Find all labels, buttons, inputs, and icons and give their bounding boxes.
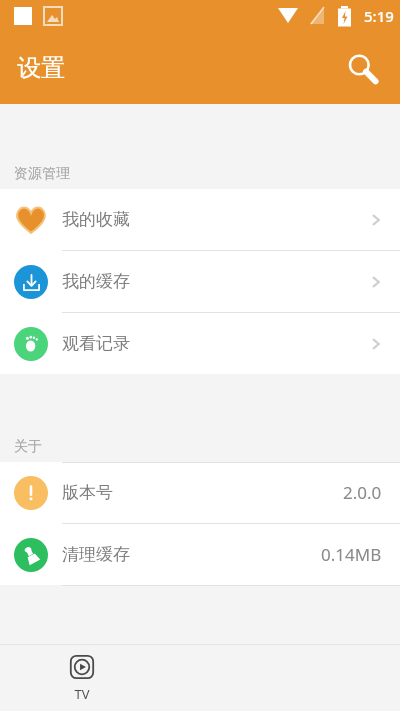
staticText: 我的缓存 [62, 271, 130, 292]
button[interactable]: 版本号 [0, 462, 400, 524]
staticText: 资源管理 [14, 165, 70, 183]
staticText: 关于 [14, 438, 42, 456]
staticText: 5:19 [364, 6, 394, 26]
staticText: 版本号 [62, 482, 113, 503]
staticText: 设置 [17, 53, 65, 83]
button[interactable]: 我的缓存 [0, 251, 400, 313]
staticText: 我的收藏 [62, 209, 130, 230]
staticText: TV [74, 685, 90, 703]
staticText: 观看记录 [62, 333, 130, 354]
staticText: 0.14MB [321, 543, 382, 566]
staticText: 2.0.0 [343, 481, 382, 504]
button[interactable]: TV [68, 653, 96, 703]
staticText: 清理缓存 [62, 544, 130, 565]
button[interactable]: 我的收藏 [0, 189, 400, 251]
button[interactable]: 观看记录 [0, 313, 400, 374]
button[interactable]: 清理缓存 [0, 524, 400, 585]
button[interactable]: Search [338, 44, 386, 92]
